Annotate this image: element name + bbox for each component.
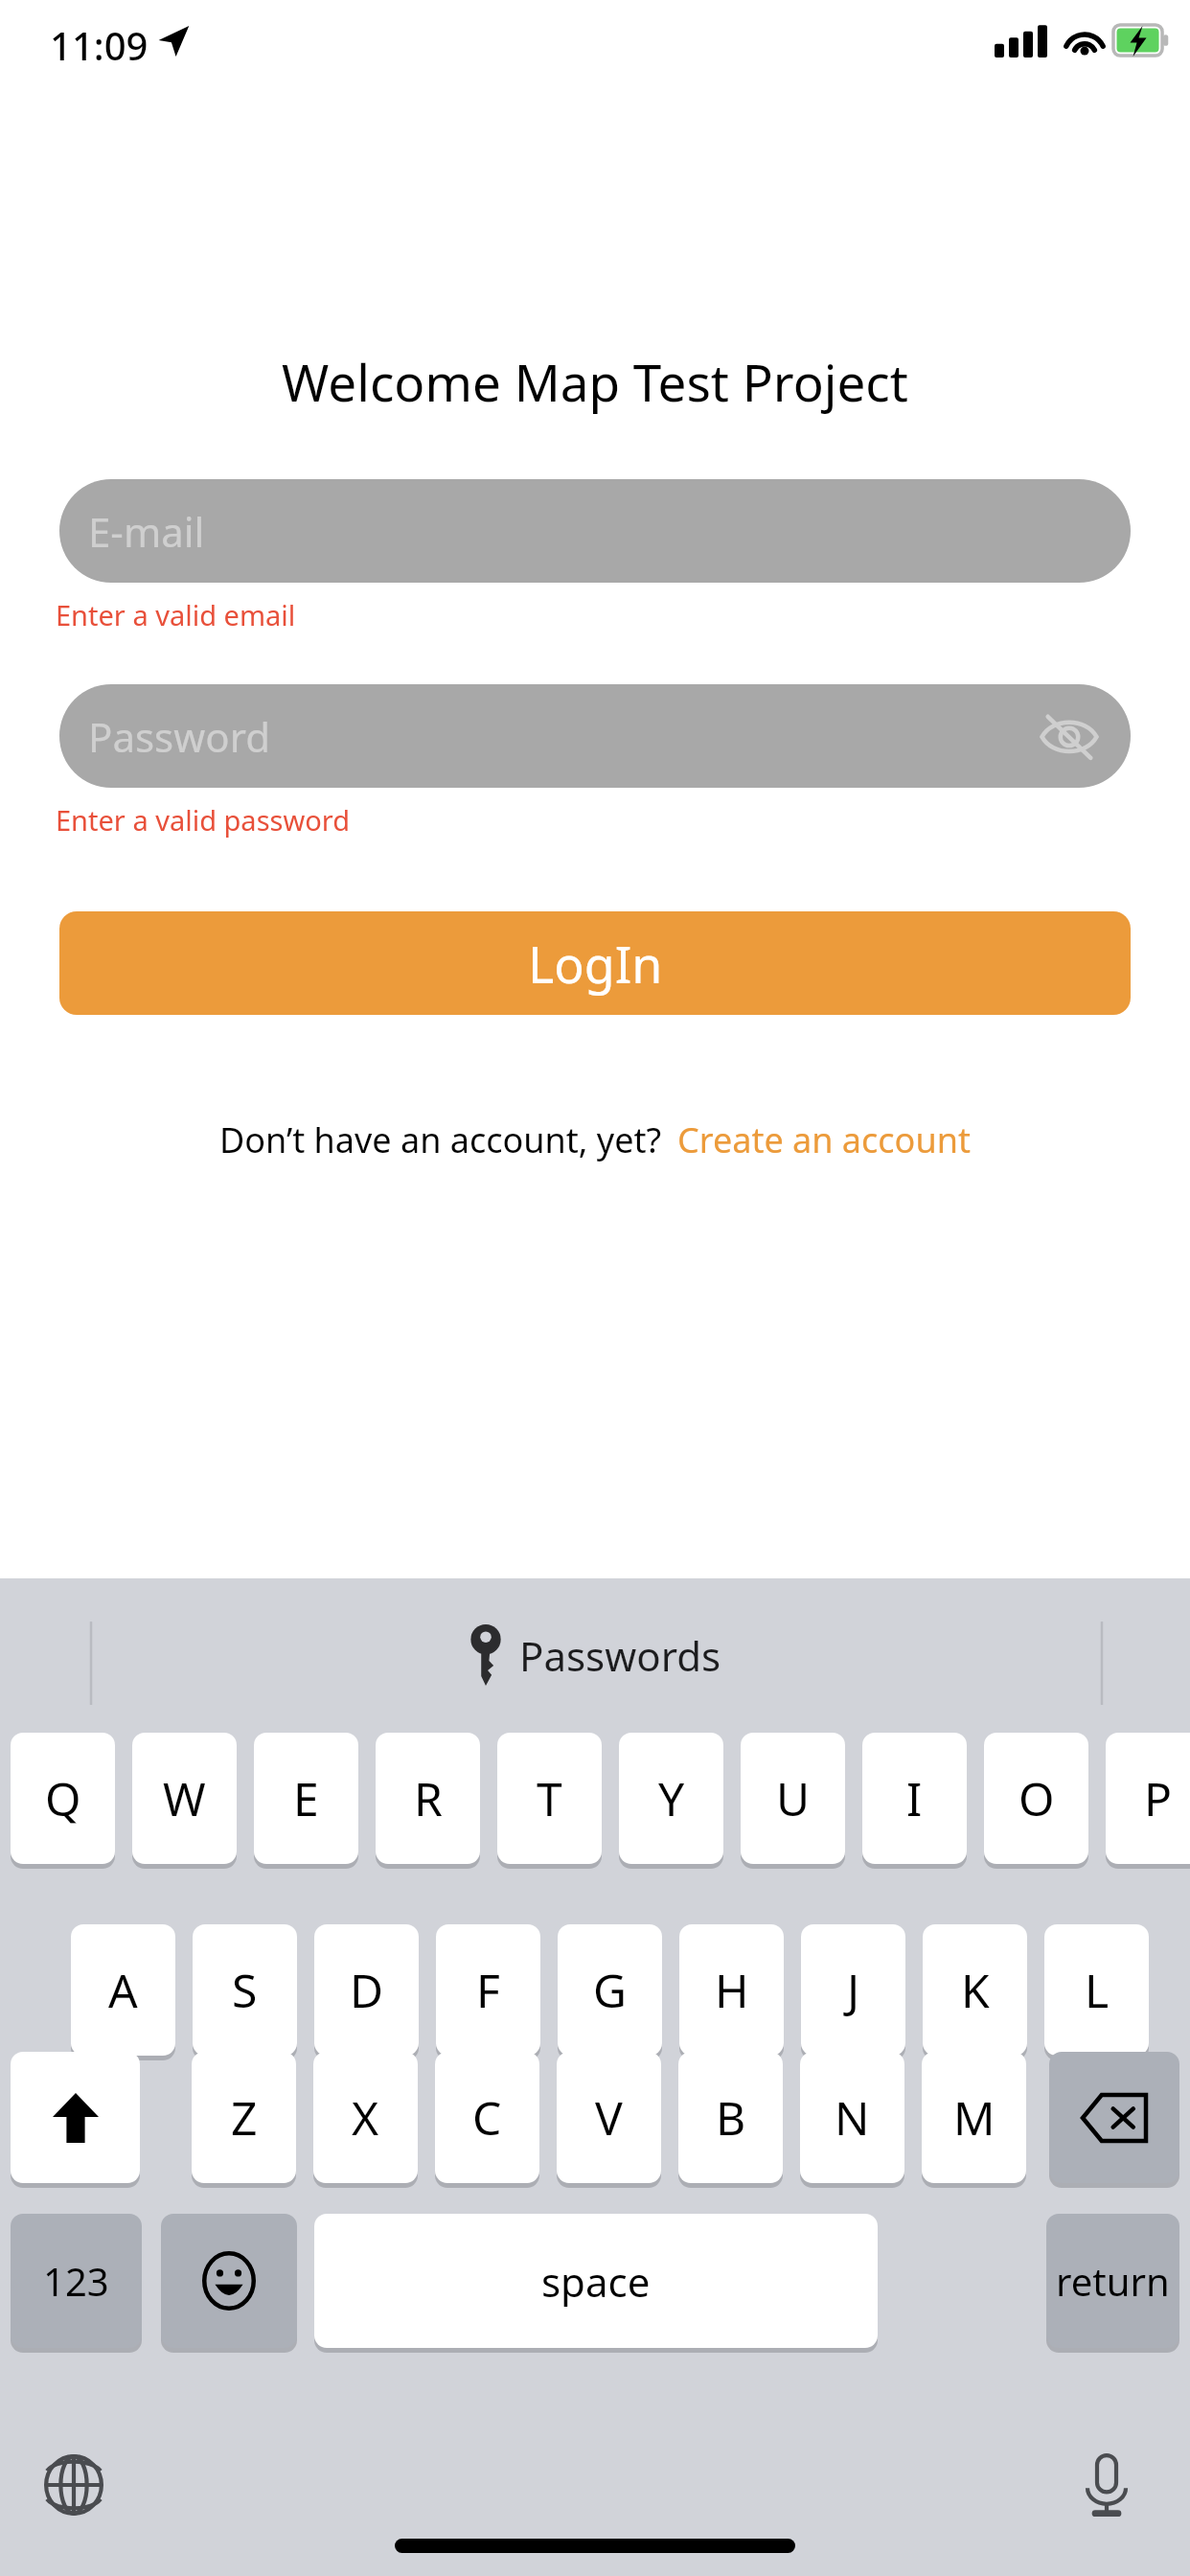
button[interactable]: Q (11, 1733, 115, 1864)
button[interactable]: U (741, 1733, 845, 1864)
staticText: Don’t have an account, yet? (219, 1116, 662, 1163)
staticText: Passwords (519, 1628, 721, 1683)
staticText: Create an account (677, 1116, 971, 1163)
staticText: M (953, 2086, 995, 2149)
button[interactable]: Change keyboard language (40, 2451, 107, 2518)
staticText: V (595, 2086, 623, 2149)
button[interactable]: K (923, 1924, 1027, 2056)
button[interactable]: O (984, 1733, 1088, 1864)
button[interactable]: N (800, 2052, 904, 2183)
button[interactable]: F (436, 1924, 540, 2056)
button[interactable]: Password (59, 684, 1131, 788)
button[interactable]: LogIn (59, 911, 1131, 1015)
button[interactable]: T (497, 1733, 602, 1864)
staticText: C (472, 2086, 502, 2149)
button[interactable]: B (678, 2052, 783, 2183)
staticText: X (352, 2086, 379, 2149)
staticText: L (1085, 1959, 1110, 2021)
staticText: R (414, 1767, 443, 1829)
button[interactable]: Dictation (1073, 2451, 1140, 2518)
staticText: Enter a valid password (56, 801, 350, 839)
staticText: D (350, 1959, 384, 2021)
staticText: Password (88, 709, 270, 764)
staticText: 11:09 (50, 19, 149, 71)
button[interactable]: X (313, 2052, 418, 2183)
button[interactable]: Z (192, 2052, 296, 2183)
button[interactable]: A (71, 1924, 175, 2056)
button[interactable]: I (862, 1733, 967, 1864)
button[interactable]: space (314, 2214, 878, 2348)
button[interactable]: Emoji (161, 2214, 297, 2348)
button[interactable]: E (254, 1733, 358, 1864)
button[interactable]: M (922, 2052, 1026, 2183)
staticText: N (835, 2086, 870, 2149)
staticText: A (108, 1959, 138, 2021)
button[interactable]: C (435, 2052, 539, 2183)
button[interactable]: L (1044, 1924, 1149, 2056)
button[interactable]: R (376, 1733, 480, 1864)
button[interactable]: Create an account (662, 1116, 971, 1163)
staticText: S (232, 1959, 258, 2021)
staticText: K (961, 1959, 990, 2021)
staticText: H (715, 1959, 749, 2021)
staticText: Z (231, 2086, 258, 2149)
button[interactable]: Show password (1031, 698, 1108, 774)
staticText: J (847, 1959, 860, 2021)
button[interactable]: G (558, 1924, 662, 2056)
staticText: Welcome Map Test Project (0, 347, 1190, 416)
staticText: 123 (43, 2255, 109, 2307)
staticText: space (541, 2254, 651, 2309)
staticText: B (716, 2086, 746, 2149)
staticText: U (776, 1767, 811, 1829)
button[interactable]: Shift (11, 2052, 140, 2183)
staticText: F (476, 1959, 500, 2021)
button[interactable]: 123 (11, 2214, 142, 2348)
button[interactable]: H (679, 1924, 784, 2056)
staticText: E (293, 1767, 319, 1829)
staticText: I (906, 1767, 923, 1829)
staticText: T (537, 1767, 562, 1829)
button[interactable]: W (132, 1733, 237, 1864)
button[interactable]: J (801, 1924, 905, 2056)
button[interactable]: V (557, 2052, 661, 2183)
staticText: P (1144, 1767, 1173, 1829)
staticText: W (163, 1767, 206, 1829)
staticText: Y (658, 1767, 685, 1829)
staticText: O (1018, 1767, 1055, 1829)
button[interactable]: Y (619, 1733, 723, 1864)
staticText: return (1056, 2255, 1170, 2307)
button[interactable]: D (314, 1924, 419, 2056)
staticText: G (593, 1959, 627, 2021)
button[interactable]: Backspace (1049, 2052, 1179, 2183)
staticText: Q (45, 1767, 81, 1829)
button[interactable]: return (1046, 2214, 1179, 2348)
button[interactable]: E-mail (59, 479, 1131, 583)
staticText: Enter a valid email (56, 596, 296, 633)
button[interactable]: P (1106, 1733, 1190, 1864)
button[interactable]: S (193, 1924, 297, 2056)
staticText: LogIn (528, 930, 663, 998)
staticText: E-mail (88, 504, 205, 559)
